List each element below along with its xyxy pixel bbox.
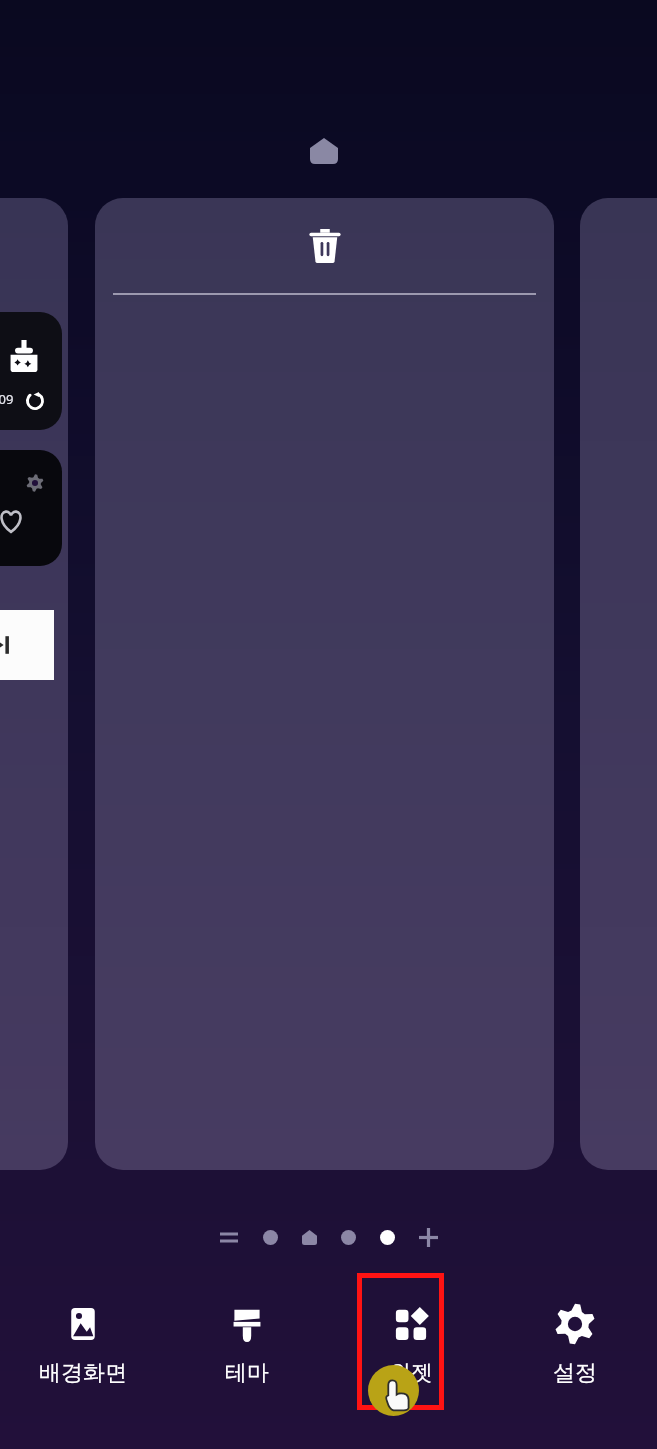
button[interactable]: Page bbox=[296, 1224, 322, 1250]
staticText: 테마 bbox=[225, 1359, 269, 1387]
button[interactable]: Delete page bbox=[303, 224, 347, 268]
button[interactable]: Add page bbox=[413, 1222, 443, 1252]
button[interactable]: Home page bbox=[305, 132, 343, 170]
button[interactable]: Page bbox=[257, 1224, 283, 1250]
button[interactable]: All pages bbox=[214, 1222, 244, 1252]
staticText: 위젯 bbox=[389, 1359, 433, 1387]
button[interactable] bbox=[0, 198, 68, 1170]
button[interactable] bbox=[580, 198, 657, 1170]
button[interactable]: Page bbox=[335, 1224, 361, 1250]
button[interactable]: Page bbox=[374, 1224, 400, 1250]
staticText: 배경화면 bbox=[39, 1359, 127, 1387]
button[interactable]: Delete page bbox=[95, 198, 554, 1170]
staticText: :09 bbox=[0, 390, 14, 408]
staticText: 설정 bbox=[553, 1359, 597, 1387]
button[interactable]: Wallpaper bbox=[0, 1267, 165, 1419]
button[interactable]: Settings bbox=[493, 1267, 657, 1419]
button[interactable]: Media widget bbox=[0, 610, 54, 680]
button[interactable]: Theme bbox=[165, 1267, 329, 1419]
button[interactable]: Cleaner widget bbox=[0, 312, 62, 430]
button[interactable]: Widgets bbox=[329, 1267, 493, 1419]
button[interactable]: Favorites widget bbox=[0, 450, 62, 566]
